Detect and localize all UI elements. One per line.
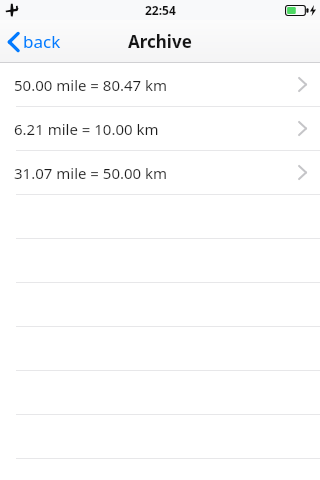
other: Open entry (298, 121, 307, 136)
other: Airplane mode (5, 3, 19, 17)
staticText: 50.00 mile = 80.47 km (14, 75, 298, 95)
other: Open entry (298, 165, 307, 180)
staticText: 6.21 mile = 10.00 km (14, 119, 298, 139)
button[interactable]: 6.21 mile = 10.00 km (0, 107, 320, 151)
button[interactable]: 31.07 mile = 50.00 km (0, 151, 320, 195)
staticText: 22:54 (145, 2, 176, 18)
staticText: back (23, 30, 61, 53)
staticText: 31.07 mile = 50.00 km (14, 163, 298, 183)
button[interactable]: 50.00 mile = 80.47 km (0, 63, 320, 107)
button[interactable]: back (0, 20, 73, 63)
staticText: Archive (128, 30, 192, 53)
other: Open entry (298, 77, 307, 92)
